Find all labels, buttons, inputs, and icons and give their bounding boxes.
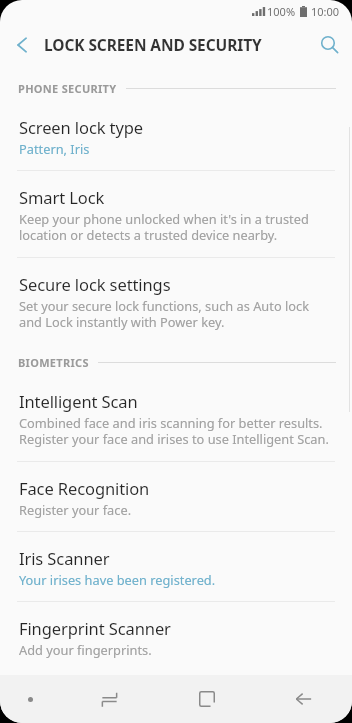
button[interactable]: Iris Scanner: [0, 532, 352, 601]
staticText: Add your fingerprints.: [19, 641, 152, 658]
button[interactable]: Search: [306, 22, 352, 67]
staticText: Face Recognition: [19, 477, 150, 499]
button[interactable]: Back: [255, 675, 352, 723]
button[interactable]: Secure lock settings: [0, 258, 352, 345]
staticText: Set your secure lock functions, such as …: [19, 297, 330, 331]
staticText: Screen lock type: [19, 116, 144, 138]
button[interactable]: Fingerprint Scanner: [0, 602, 352, 672]
staticText: Fingerprint Scanner: [19, 617, 171, 639]
button[interactable]: Face Recognition: [0, 462, 352, 531]
staticText: 100%: [267, 4, 296, 19]
staticText: BIOMETRICS: [18, 355, 89, 370]
staticText: Smart Lock: [19, 186, 105, 208]
staticText: Keep your phone unlocked when it's in a …: [19, 210, 330, 244]
staticText: Combined face and iris scanning for bett…: [19, 414, 330, 448]
button[interactable]: Smart Lock: [0, 171, 352, 257]
button[interactable]: Home: [158, 675, 255, 723]
button[interactable]: Recents: [61, 675, 158, 723]
staticText: LOCK SCREEN AND SECURITY: [44, 34, 306, 55]
staticText: Pattern, Iris: [19, 140, 90, 157]
staticText: Iris Scanner: [19, 547, 110, 569]
staticText: Your irises have been registered.: [19, 571, 216, 588]
button[interactable]: Intelligent Scan: [0, 376, 352, 461]
staticText: Secure lock settings: [19, 273, 171, 295]
staticText: 10:00: [311, 4, 340, 19]
staticText: PHONE SECURITY: [18, 81, 117, 96]
staticText: Intelligent Scan: [19, 390, 138, 412]
button[interactable]: Screen lock type: [0, 102, 352, 170]
staticText: Register your face.: [19, 501, 132, 518]
button[interactable]: Back: [0, 23, 44, 67]
